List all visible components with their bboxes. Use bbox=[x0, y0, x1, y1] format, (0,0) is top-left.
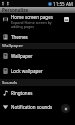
staticText: Themes bbox=[11, 34, 28, 40]
button[interactable]: Lock wallpaper bbox=[0, 63, 75, 78]
staticText: 11:55 AM bbox=[53, 1, 74, 7]
staticText: Wallpaper bbox=[2, 43, 24, 49]
staticText: Home screen pages bbox=[11, 14, 53, 20]
staticText: Lock wallpaper bbox=[11, 68, 43, 74]
button[interactable]: Themes bbox=[0, 30, 75, 43]
button[interactable]: Wallpaper bbox=[0, 49, 75, 63]
staticText: Sounds bbox=[2, 80, 18, 86]
button[interactable]: Ringtones bbox=[0, 86, 75, 100]
staticText: Notification sounds bbox=[11, 104, 53, 110]
staticText: Ringtones bbox=[11, 90, 33, 96]
button[interactable]: Home screen pages bbox=[0, 13, 75, 30]
button[interactable]: Notification sounds bbox=[0, 100, 75, 114]
button[interactable]: Scroll down bbox=[61, 104, 70, 113]
staticText: Wallpaper bbox=[11, 53, 33, 59]
staticText: Personalize bbox=[2, 7, 29, 13]
staticText: Expand Home screen by adding pages bbox=[11, 20, 64, 29]
